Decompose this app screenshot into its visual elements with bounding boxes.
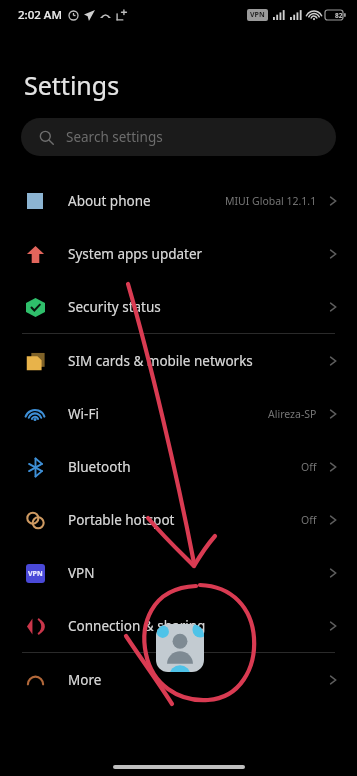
staticText: System apps updater — [68, 245, 203, 263]
staticText: Bluetooth — [68, 458, 131, 476]
staticText: MIUI Global 12.1.1 — [225, 194, 317, 208]
staticText: VPN — [250, 10, 265, 20]
button[interactable]: About phone — [0, 174, 357, 227]
staticText: Wi-Fi — [68, 405, 99, 423]
button[interactable]: Security status — [0, 280, 357, 333]
staticText: More — [68, 671, 102, 689]
staticText: 2:02 AM — [18, 7, 62, 23]
staticText: VPN — [68, 564, 95, 582]
staticText: Settings — [24, 68, 120, 102]
button[interactable]: SIM cards & mobile networks — [0, 334, 357, 387]
button[interactable]: Portable hotspot — [0, 493, 357, 546]
button[interactable]: Wi-Fi — [0, 387, 357, 440]
staticText: Off — [301, 460, 317, 474]
other: Contact avatar — [156, 624, 204, 672]
button[interactable]: More — [0, 653, 357, 706]
button[interactable]: Bluetooth — [0, 440, 357, 493]
staticText: SIM cards & mobile networks — [68, 352, 253, 370]
button[interactable]: VPN — [0, 546, 357, 599]
staticText: Search settings — [66, 128, 163, 146]
button[interactable]: System apps updater — [0, 227, 357, 280]
staticText: Connection & sharing — [68, 617, 206, 635]
button[interactable]: Search settings — [21, 118, 336, 156]
staticText: Off — [301, 513, 317, 527]
staticText: 82 — [335, 11, 343, 20]
button[interactable]: Connection & sharing — [0, 599, 357, 652]
staticText: Portable hotspot — [68, 511, 175, 529]
staticText: VPN — [28, 569, 43, 579]
staticText: Security status — [68, 298, 161, 316]
staticText: About phone — [68, 192, 151, 210]
staticText: Alireza-SP — [268, 407, 317, 421]
